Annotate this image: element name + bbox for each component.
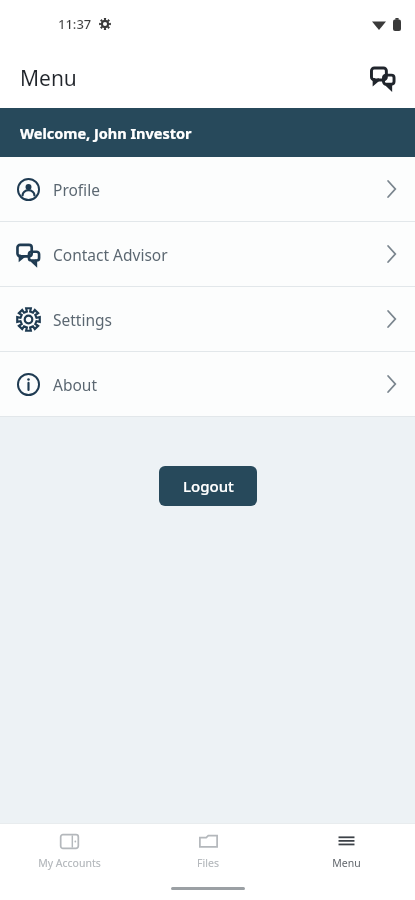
button[interactable]: Profile — [0, 157, 415, 221]
staticText: Menu — [332, 856, 361, 870]
staticText: Welcome, John Investor — [20, 123, 192, 143]
button[interactable]: Settings — [0, 287, 415, 351]
button[interactable]: About — [0, 352, 415, 416]
staticText: Contact Advisor — [53, 244, 387, 265]
staticText: About — [53, 374, 387, 395]
staticText: My Accounts — [38, 856, 101, 870]
button[interactable]: Contact Advisor — [0, 222, 415, 286]
staticText: Logout — [183, 476, 234, 496]
staticText: Settings — [53, 309, 387, 330]
staticText: Files — [197, 856, 219, 870]
staticText: Menu — [20, 64, 77, 93]
button[interactable]: Files — [139, 826, 277, 875]
button[interactable]: Logout — [159, 466, 257, 506]
button[interactable]: Menu — [277, 826, 415, 875]
button[interactable]: Messages — [361, 56, 405, 100]
staticText: 11:37 — [58, 15, 92, 33]
staticText: Profile — [53, 179, 387, 200]
button[interactable]: My Accounts — [0, 826, 139, 875]
